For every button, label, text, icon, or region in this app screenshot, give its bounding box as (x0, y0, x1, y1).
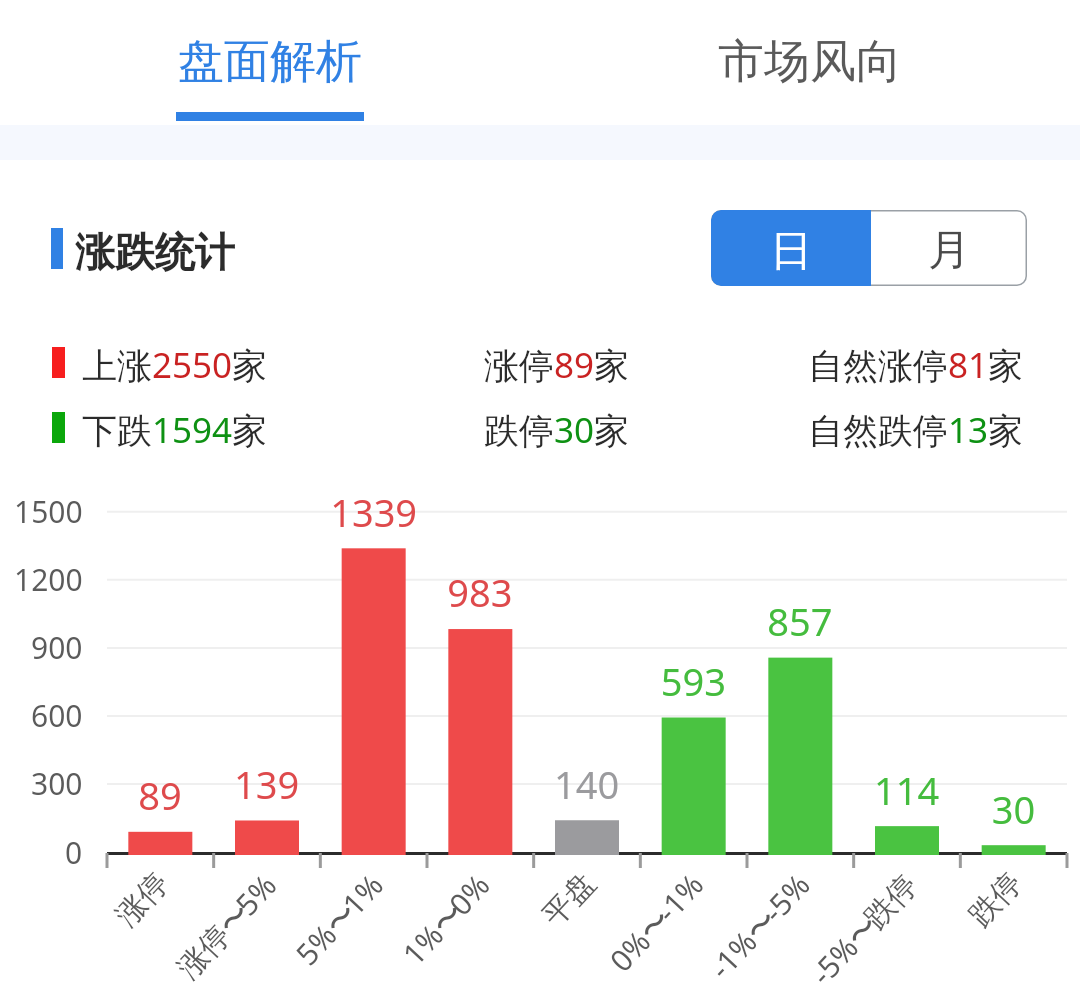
staticText: 涨停89家 (484, 341, 630, 389)
staticText: 下跌1594家 (82, 406, 268, 454)
staticText: 日 (770, 225, 812, 278)
staticText: 自然跌停13家 (808, 406, 1024, 454)
button[interactable]: 市场风向 (540, 0, 1080, 125)
button[interactable]: 盘面解析 (0, 0, 540, 125)
button[interactable]: 月 (871, 210, 1027, 286)
staticText: 盘面解析 (178, 33, 362, 91)
staticText: 涨跌统计 (75, 227, 235, 277)
staticText: 上涨2550家 (82, 341, 268, 389)
staticText: 跌停30家 (484, 406, 630, 454)
staticText: 自然涨停81家 (808, 341, 1024, 389)
staticText: 市场风向 (718, 33, 902, 91)
button[interactable]: 日 (711, 210, 871, 286)
staticText: 月 (928, 224, 970, 277)
